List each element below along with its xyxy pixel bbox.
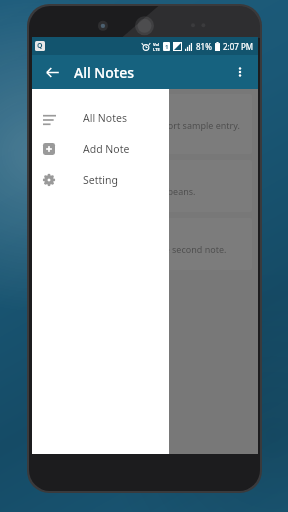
staticText: All Notes (83, 111, 127, 125)
staticText: Shopping (46, 166, 96, 181)
staticText: LTE (153, 47, 160, 52)
button[interactable]: All Notes (32, 102, 169, 133)
staticText: Setting (83, 173, 118, 187)
staticText: 1 (165, 43, 169, 51)
staticText: 81% (196, 41, 212, 52)
button[interactable]: Setting (32, 164, 169, 195)
staticText: Remember to write down the second note. (46, 243, 227, 255)
staticText: 2:07 PM (223, 41, 254, 52)
staticText: All Notes (74, 63, 134, 82)
staticText: Vol (153, 42, 160, 47)
staticText: First Note (46, 100, 98, 115)
button[interactable]: First Note (38, 94, 252, 154)
button[interactable]: More options (226, 58, 254, 86)
button[interactable]: Ideas (38, 218, 252, 270)
staticText: Add Note (83, 142, 130, 156)
staticText: Q (37, 41, 43, 51)
button[interactable]: Add Note (32, 133, 169, 164)
button[interactable]: Back (37, 57, 67, 87)
button[interactable]: Shopping (38, 160, 252, 212)
staticText: This is my first note. It is a short sam… (46, 119, 240, 131)
staticText: Milk, eggs, bread and coffee beans. (46, 185, 196, 197)
